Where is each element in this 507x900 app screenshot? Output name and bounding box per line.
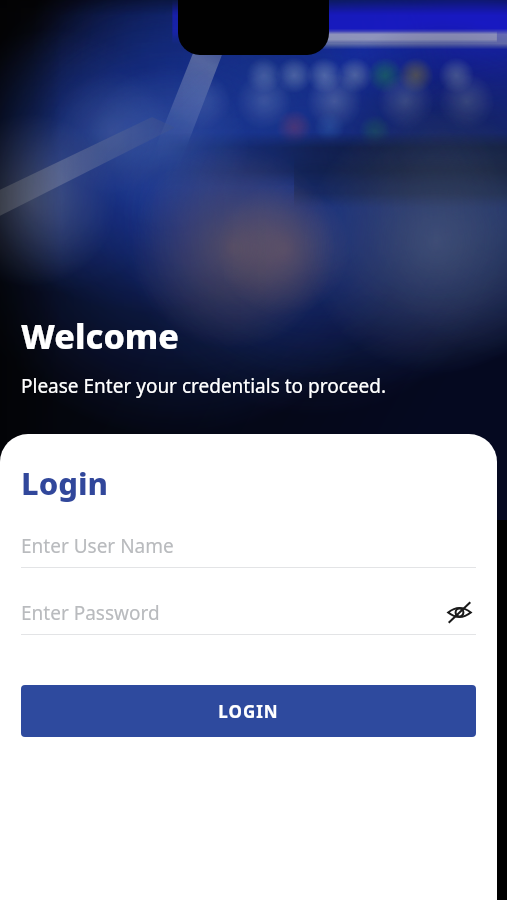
staticText: Welcome — [21, 313, 179, 359]
button[interactable]: Enter Password — [21, 596, 476, 635]
staticText: LOGIN — [218, 700, 279, 723]
button[interactable]: Show password — [442, 596, 476, 629]
button[interactable]: Enter User Name — [21, 529, 476, 568]
staticText: Login — [21, 462, 109, 504]
staticText: Enter Password — [21, 600, 442, 626]
staticText: Please Enter your credentials to proceed… — [21, 373, 386, 399]
button[interactable]: LOGIN — [21, 685, 476, 737]
staticText: Enter User Name — [21, 533, 174, 559]
